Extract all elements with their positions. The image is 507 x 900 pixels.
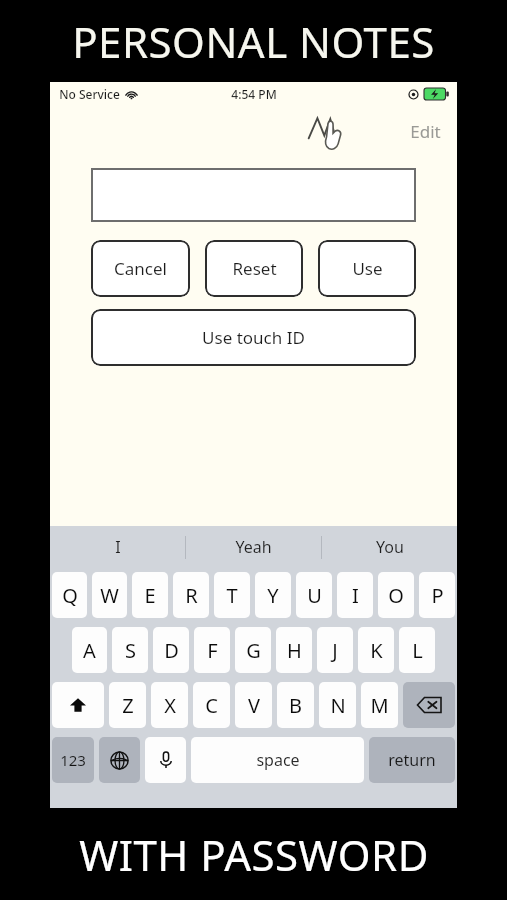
staticText: S [125,637,136,664]
staticText: Q [62,582,78,609]
button[interactable]: Dictation [145,737,186,783]
button[interactable]: space [191,737,364,783]
staticText: Edit [410,120,441,143]
staticText: return [388,749,436,771]
button[interactable]: S [112,627,148,673]
button[interactable]: Password entry field [91,168,416,222]
staticText: F [207,637,218,664]
button[interactable]: W [92,572,127,618]
button[interactable]: K [358,627,394,673]
button[interactable]: Cancel [91,240,190,297]
staticText: Z [122,692,134,719]
staticText: Yeah [235,536,272,558]
button[interactable]: return [369,737,455,783]
button[interactable]: P [419,572,455,618]
staticText: No Service [59,86,120,102]
button[interactable]: Use [318,240,416,297]
staticText: I [115,536,121,558]
button[interactable]: I [50,526,185,568]
staticText: V [248,692,260,719]
staticText: Use touch ID [202,326,305,349]
button[interactable]: U [296,572,332,618]
button[interactable]: F [194,627,230,673]
staticText: 123 [60,750,86,770]
button[interactable]: I [337,572,373,618]
button[interactable]: 123 [52,737,94,783]
staticText: Use [352,257,383,280]
button[interactable]: J [317,627,353,673]
staticText: Y [267,582,279,609]
button[interactable]: A [72,627,107,673]
staticText: K [370,637,383,664]
button[interactable]: Use touch ID [91,309,416,366]
staticText: E [144,582,156,609]
button[interactable]: Shift [52,682,104,728]
button[interactable]: You [322,526,457,568]
button[interactable]: B [277,682,314,728]
staticText: Reset [232,257,277,280]
button[interactable]: E [132,572,168,618]
button[interactable]: N [319,682,356,728]
button[interactable]: R [173,572,209,618]
button[interactable]: D [153,627,189,673]
staticText: 4:54 PM [231,86,277,102]
staticText: PERSONAL NOTES [72,13,435,70]
staticText: I [352,582,359,609]
staticText: space [256,749,300,771]
button[interactable]: Q [52,572,87,618]
staticText: A [83,637,96,664]
staticText: D [164,637,179,664]
button[interactable]: X [151,682,188,728]
staticText: G [246,637,261,664]
button[interactable]: Edit [402,114,449,149]
button[interactable]: T [214,572,250,618]
staticText: L [412,637,423,664]
staticText: M [370,692,389,719]
staticText: You [376,536,404,558]
button[interactable]: M [361,682,398,728]
staticText: J [332,637,338,664]
staticText: U [307,582,322,609]
staticText: O [388,582,404,609]
button[interactable]: Change keyboard language [99,737,140,783]
staticText: T [226,582,238,609]
button[interactable]: Reset [205,240,303,297]
button[interactable]: Z [109,682,146,728]
staticText: R [185,582,198,609]
button[interactable]: O [378,572,414,618]
button[interactable]: V [235,682,272,728]
button[interactable]: L [399,627,435,673]
staticText: H [287,637,302,664]
staticText: N [330,692,346,719]
button[interactable]: Backspace [403,682,455,728]
staticText: B [289,692,302,719]
staticText: P [431,582,444,609]
button[interactable]: Yeah [186,526,321,568]
button[interactable]: C [193,682,230,728]
staticText: W [100,582,119,609]
staticText: Cancel [114,257,167,280]
button[interactable]: G [235,627,271,673]
button[interactable]: App logo [305,108,351,154]
button[interactable]: Y [255,572,291,618]
button[interactable]: H [276,627,312,673]
staticText: X [164,692,176,719]
staticText: C [205,692,218,719]
staticText: WITH PASSWORD [79,826,429,883]
